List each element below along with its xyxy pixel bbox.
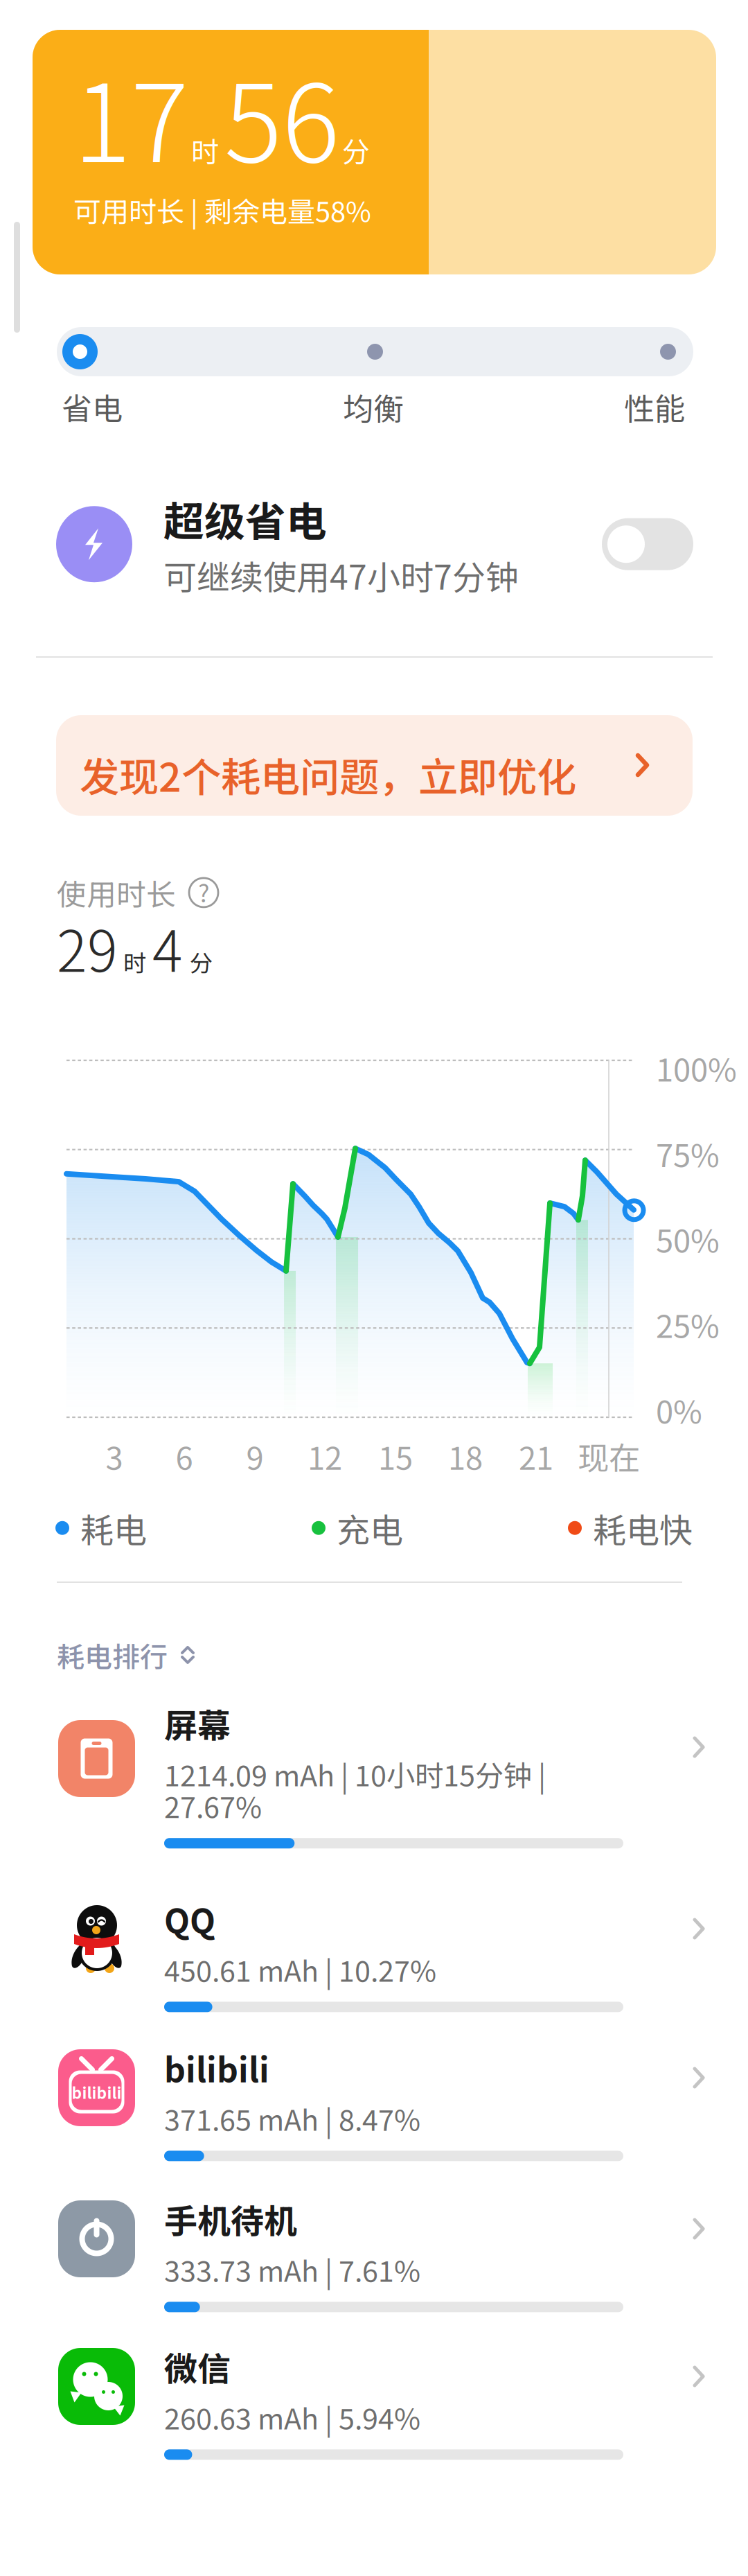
button[interactable]: 屏幕 — [0, 1699, 748, 1848]
button[interactable]: 超级省电 — [56, 489, 693, 599]
staticText: 4 — [152, 906, 183, 988]
staticText: 充电 — [337, 1504, 403, 1552]
staticText: 耗电快 — [593, 1504, 693, 1552]
button[interactable]: QQ — [0, 1895, 748, 2012]
staticText: 均衡 — [343, 385, 404, 429]
staticText: 1214.09 mAh | 10小时15分钟 | — [164, 1753, 546, 1795]
staticText: 省电 — [62, 385, 123, 429]
staticText: 17 — [73, 37, 188, 193]
staticText: QQ — [164, 1895, 215, 1943]
staticText: 25% — [656, 1302, 720, 1347]
button[interactable]: bilibili — [0, 2044, 748, 2161]
staticText: 时 — [123, 945, 146, 979]
staticText: 12 — [308, 1433, 342, 1479]
staticText: 29 — [57, 906, 118, 988]
staticText: 时 — [191, 130, 219, 170]
button[interactable]: 耗电排行 — [57, 1635, 195, 1675]
staticText: 100% — [656, 1045, 737, 1091]
button[interactable]: 微信 — [0, 2342, 748, 2460]
staticText: bilibili — [164, 2044, 269, 2092]
staticText: 15 — [378, 1433, 413, 1479]
button[interactable]: 性能 — [624, 385, 685, 429]
staticText: 260.63 mAh | 5.94% — [164, 2396, 420, 2438]
staticText: 可用时长 | 剩余电量58% — [73, 190, 371, 230]
staticText: 6 — [176, 1433, 193, 1479]
staticText: ? — [198, 874, 209, 909]
staticText: bilibili — [72, 2081, 122, 2103]
staticText: 50% — [656, 1216, 720, 1262]
staticText: 使用时长 — [57, 871, 176, 914]
staticText: 超级省电 — [163, 489, 327, 548]
staticText: 9 — [246, 1433, 264, 1479]
staticText: 21 — [519, 1433, 553, 1479]
staticText: 分 — [342, 130, 370, 170]
staticText: 发现2个耗电问题，立即优化 — [80, 746, 576, 803]
button[interactable]: 省电 — [62, 385, 123, 429]
staticText: 18 — [448, 1433, 483, 1479]
staticText: 0% — [656, 1387, 702, 1432]
staticText: 现在 — [578, 1433, 640, 1479]
staticText: 450.61 mAh | 10.27% — [164, 1948, 436, 1990]
staticText: 3 — [106, 1433, 123, 1479]
staticText: 性能 — [624, 385, 685, 429]
button[interactable]: 均衡 — [343, 385, 404, 429]
staticText: 56 — [224, 37, 339, 193]
staticText: 371.65 mAh | 8.47% — [164, 2097, 420, 2139]
staticText: 手机待机 — [164, 2195, 297, 2243]
button[interactable]: 手机待机 — [0, 2195, 748, 2312]
staticText: 75% — [656, 1131, 720, 1176]
staticText: 微信 — [164, 2342, 231, 2391]
staticText: 耗电 — [80, 1504, 147, 1552]
staticText: 333.73 mAh | 7.61% — [164, 2249, 420, 2290]
button[interactable]: 发现2个耗电问题，立即优化 — [56, 715, 693, 816]
staticText: 屏幕 — [164, 1699, 231, 1747]
staticText: 可继续使用47小时7分钟 — [163, 551, 519, 599]
staticText: 耗电排行 — [57, 1635, 168, 1675]
staticText: 27.67% — [164, 1785, 262, 1826]
staticText: 分 — [190, 945, 213, 979]
